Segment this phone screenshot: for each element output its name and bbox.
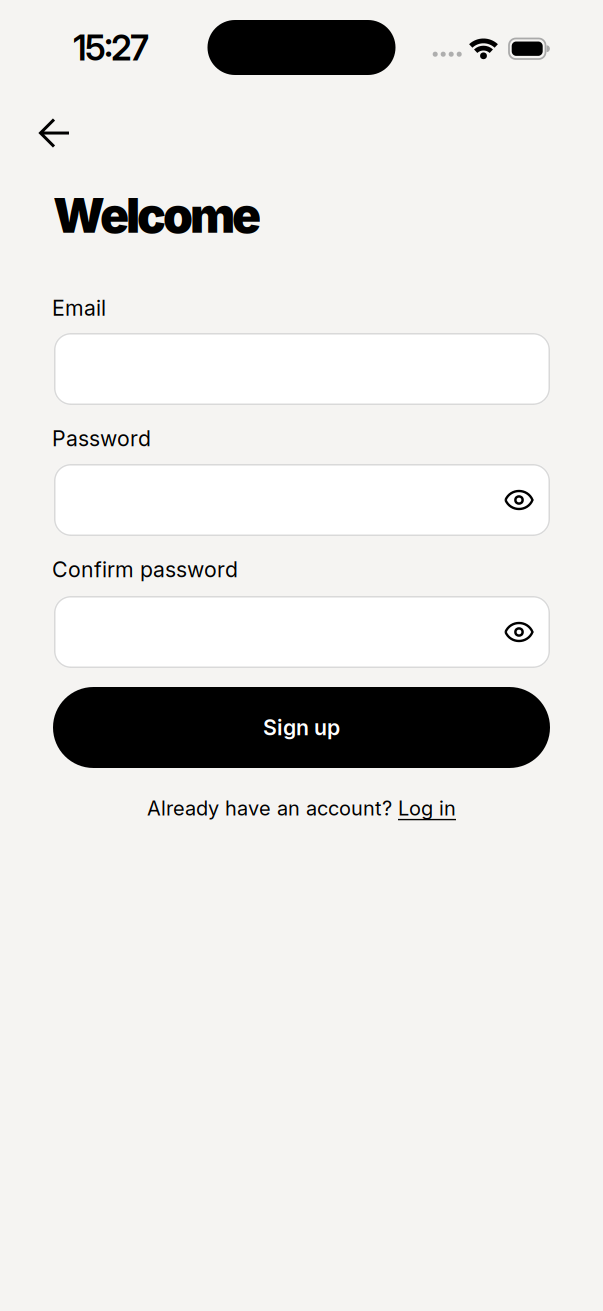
staticText: 15:27	[73, 28, 149, 68]
staticText: Log in	[398, 796, 456, 820]
staticText: Welcome	[53, 187, 261, 244]
staticText: Email	[52, 295, 106, 321]
staticText: Password	[52, 426, 151, 451]
button[interactable]: Log in	[398, 796, 456, 820]
button[interactable]: Sign up	[53, 687, 550, 768]
staticText: Confirm password	[52, 557, 238, 582]
button[interactable]: Back	[32, 110, 76, 154]
staticText: Already have an account?	[147, 796, 398, 820]
staticText: Sign up	[263, 715, 340, 740]
button[interactable]: Show password	[497, 610, 541, 654]
button[interactable]: Show password	[497, 478, 541, 522]
